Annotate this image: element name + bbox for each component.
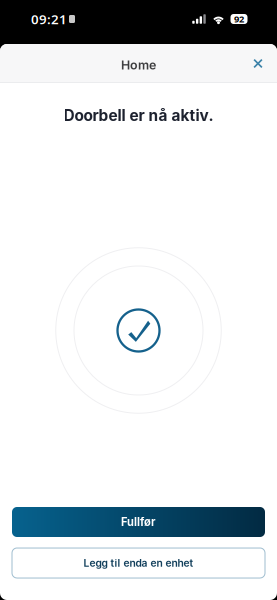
staticText: Doorbell er nå aktiv.: [63, 106, 213, 125]
staticText: 92: [234, 13, 244, 25]
button[interactable]: Fullfør: [12, 507, 265, 537]
button[interactable]: Close: [241, 46, 275, 80]
staticText: Home: [121, 57, 156, 72]
staticText: Fullfør: [121, 515, 156, 529]
staticText: Legg til enda en enhet: [83, 557, 193, 569]
button[interactable]: Legg til enda en enhet: [12, 548, 265, 578]
staticText: 09:21: [31, 10, 67, 28]
